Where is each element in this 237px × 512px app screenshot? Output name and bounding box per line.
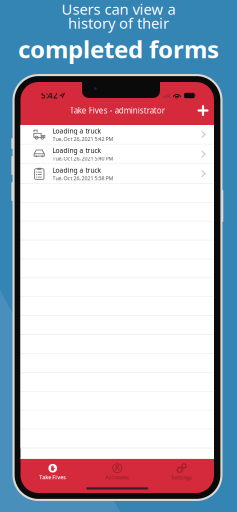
button[interactable]: Settings	[149, 459, 214, 481]
button[interactable]: Take Fives	[20, 459, 85, 481]
staticText: Settings	[171, 474, 192, 481]
staticText: Tue, Oct 26, 2021 5:40 PM	[52, 155, 113, 162]
button[interactable]: Loading a truck	[20, 125, 214, 144]
staticText: history of their	[68, 13, 169, 33]
staticText: completed forms	[18, 33, 219, 65]
staticText: Loading a truck	[52, 146, 101, 155]
button[interactable]: Loading a truck	[20, 145, 214, 163]
staticText: Users can view a	[61, 0, 175, 19]
button[interactable]: New form	[192, 102, 214, 119]
staticText: Accounts	[105, 474, 129, 481]
button[interactable]: Loading a truck	[20, 164, 214, 183]
staticText: Loading a truck	[52, 166, 101, 175]
staticText: Take Fives - administrator	[70, 105, 165, 116]
button[interactable]: Accounts	[85, 459, 149, 481]
staticText: Loading a truck	[52, 126, 101, 135]
staticText: Tue, Oct 26, 2021 5:42 PM	[52, 135, 113, 142]
staticText: Tue, Oct 26, 2021 5:38 PM	[52, 174, 113, 182]
staticText: Take Fives	[39, 474, 66, 481]
staticText: 5:42	[41, 90, 58, 101]
